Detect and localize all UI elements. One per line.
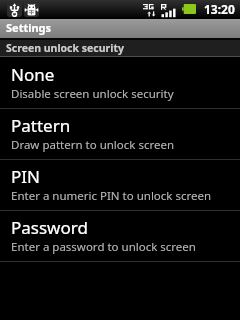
button[interactable]: PIN	[0, 160, 240, 211]
button[interactable]: Password	[0, 211, 240, 262]
staticText: PIN	[11, 165, 40, 188]
staticText: Enter a numeric PIN to unlock screen	[11, 188, 212, 204]
button[interactable]: Pattern	[0, 109, 240, 160]
staticText: Screen unlock security	[6, 41, 124, 55]
staticText: None	[11, 63, 55, 86]
staticText: Settings	[6, 20, 52, 35]
staticText: Disable screen unlock security	[11, 86, 174, 102]
other: Roaming signal strength	[161, 1, 176, 18]
other: USB debugging connected	[24, 2, 39, 17]
staticText: Enter a password to unlock screen	[11, 239, 196, 255]
other: 3G data	[143, 1, 155, 18]
staticText: Pattern	[11, 114, 71, 137]
staticText: 13:20	[204, 1, 235, 17]
button[interactable]: None	[0, 58, 240, 109]
other: USB connected	[7, 2, 22, 17]
staticText: Draw pattern to unlock screen	[11, 137, 175, 153]
other: Battery full	[182, 4, 196, 14]
staticText: Password	[11, 216, 88, 239]
